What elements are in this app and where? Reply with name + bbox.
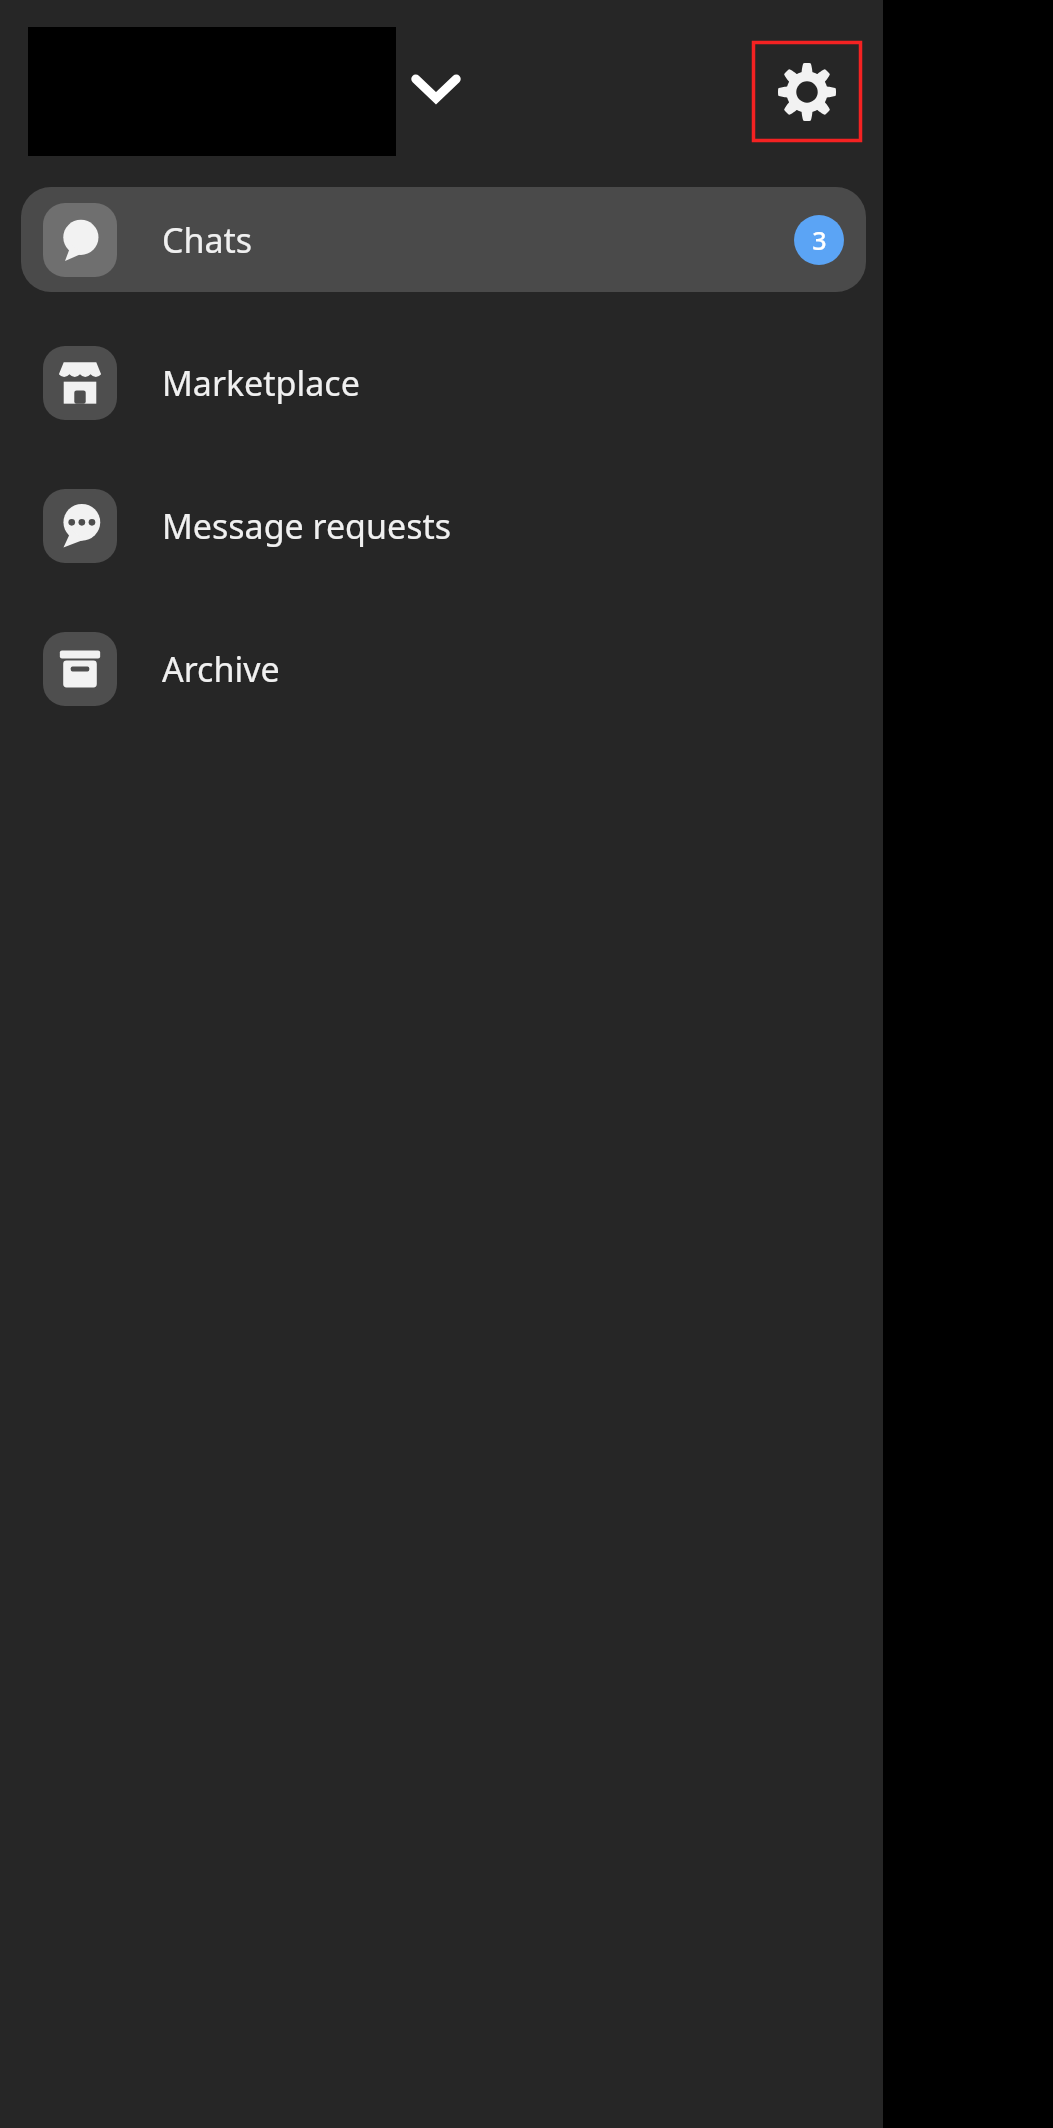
- staticText: 3: [812, 223, 827, 257]
- staticText: Archive: [162, 646, 280, 692]
- button[interactable]: Archive: [21, 616, 866, 721]
- button[interactable]: Chats: [21, 187, 866, 292]
- staticText: Chats: [162, 217, 253, 263]
- staticText: Message requests: [162, 503, 452, 549]
- button[interactable]: Marketplace: [21, 330, 866, 435]
- button[interactable]: Settings: [752, 41, 862, 142]
- button[interactable]: Expand: [398, 50, 474, 126]
- button[interactable]: Message requests: [21, 473, 866, 578]
- staticText: Marketplace: [162, 360, 360, 406]
